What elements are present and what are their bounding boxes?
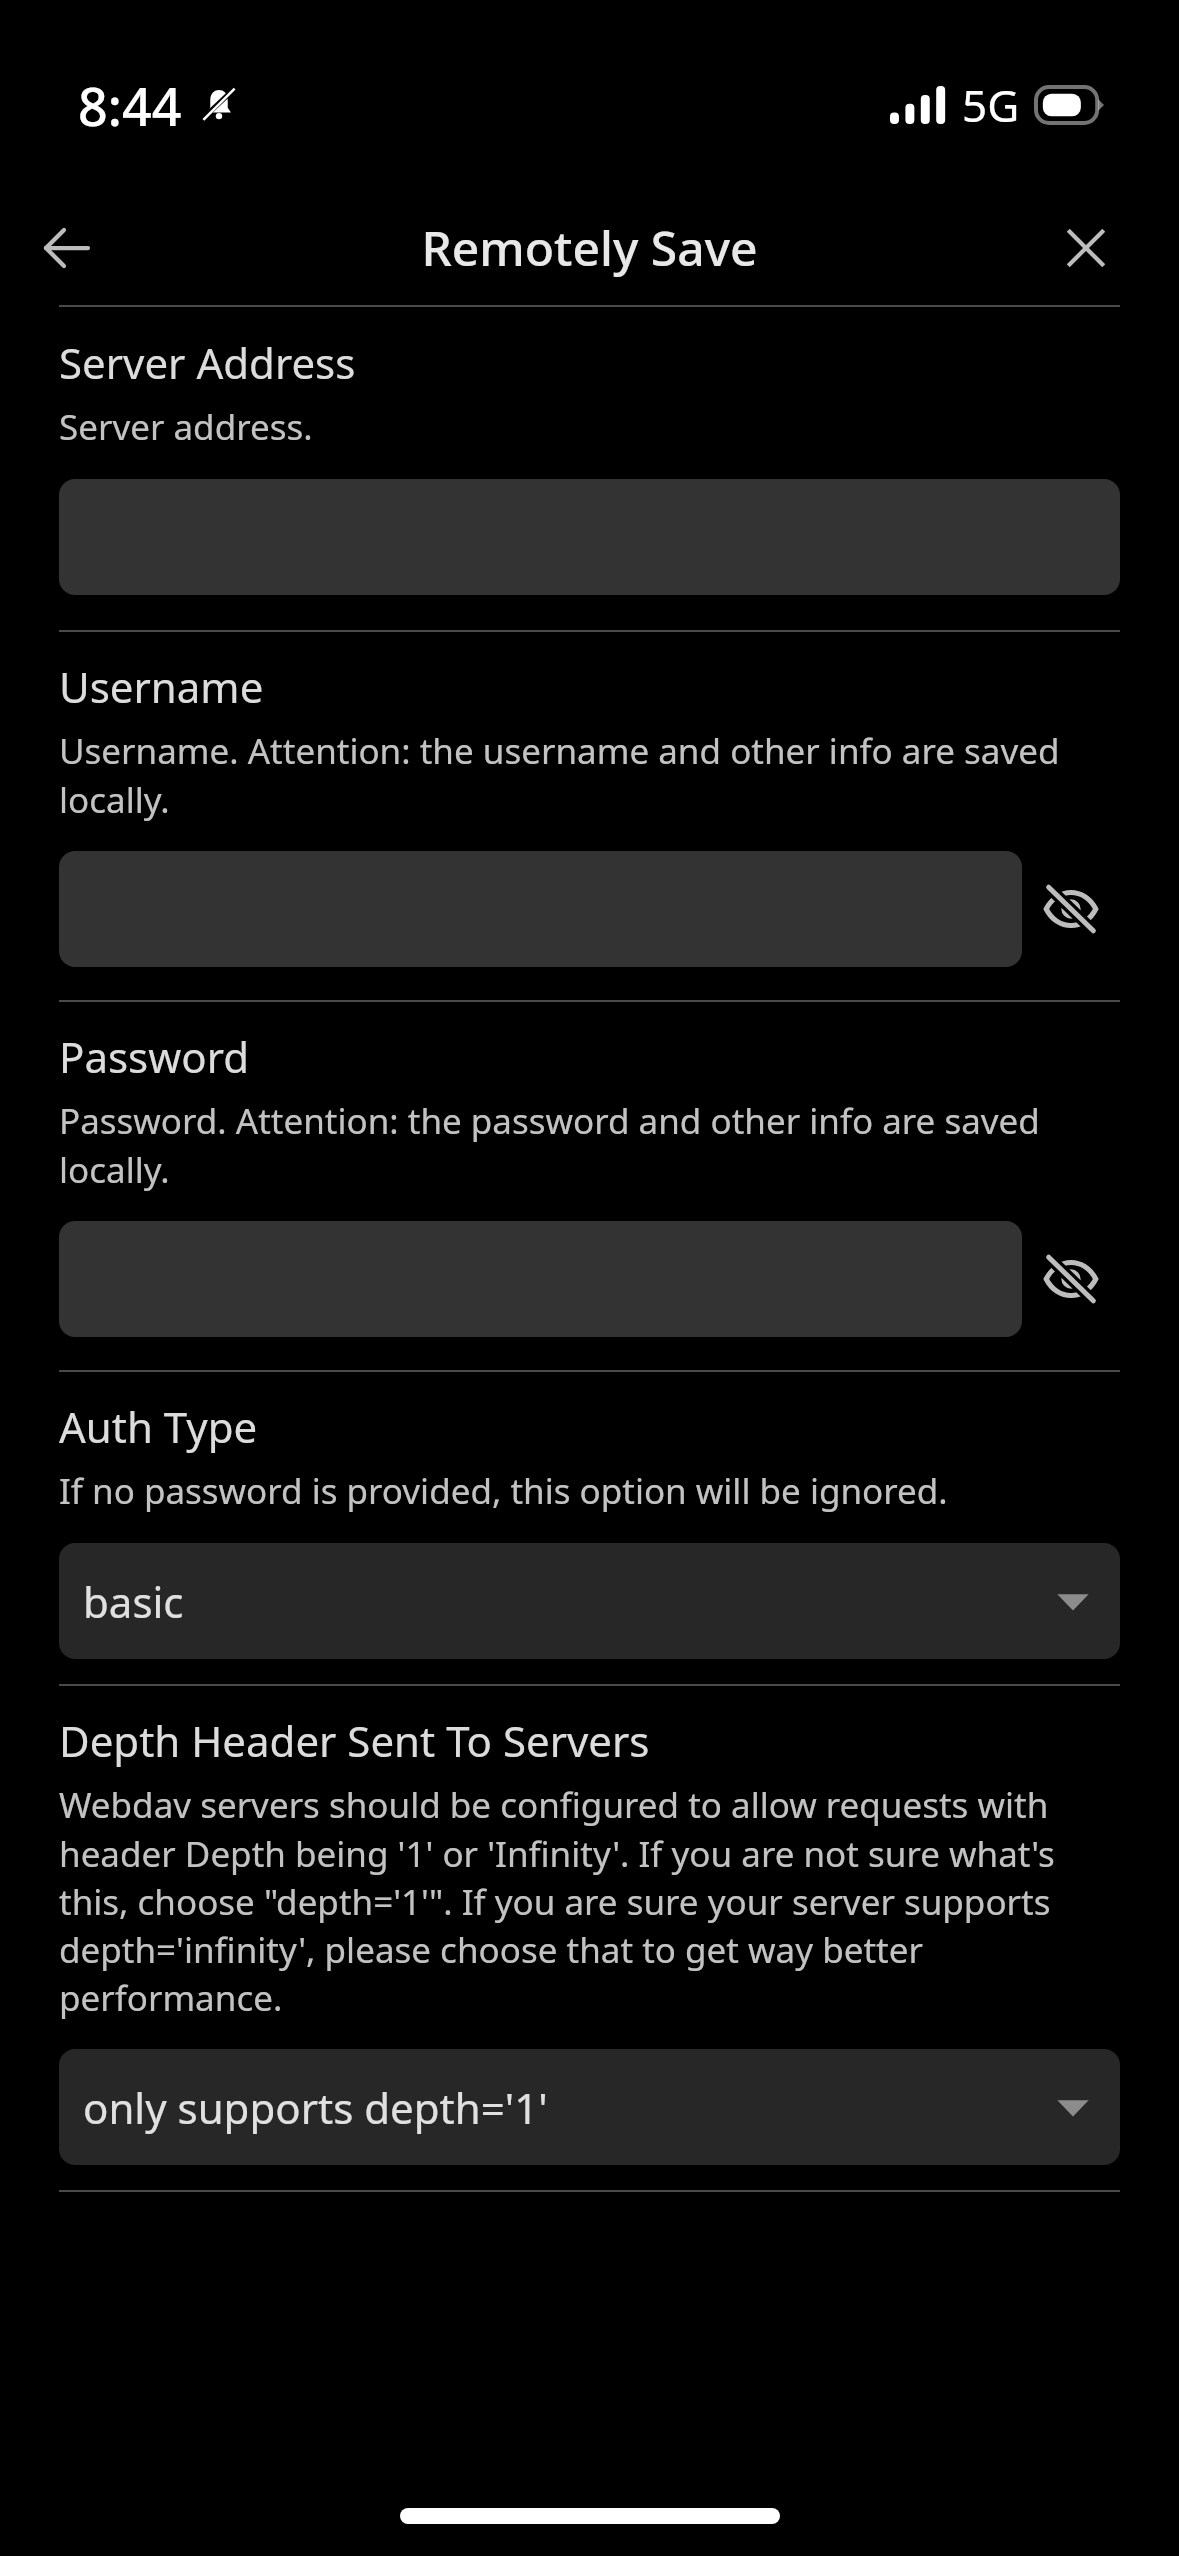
staticText: Server address. xyxy=(59,403,313,451)
button[interactable]: Close xyxy=(1046,208,1126,288)
staticText: basic xyxy=(83,1573,184,1630)
staticText: Depth Header Sent To Servers xyxy=(59,1712,650,1769)
button[interactable]: Back xyxy=(24,205,110,291)
staticText: 5G xyxy=(962,75,1020,135)
staticText: Server Address xyxy=(59,334,356,391)
staticText: If no password is provided, this option … xyxy=(59,1467,948,1515)
staticText: 8:44 xyxy=(78,70,182,141)
staticText: Password. Attention: the password and ot… xyxy=(59,1097,1120,1193)
staticText: Remotely Save xyxy=(421,215,758,280)
staticText: Username xyxy=(59,658,264,715)
staticText: Auth Type xyxy=(59,1398,258,1455)
button[interactable]: basic xyxy=(59,1543,1120,1659)
button[interactable]: Toggle visibility xyxy=(1022,851,1120,967)
button[interactable]: Toggle visibility xyxy=(1022,1221,1120,1337)
button[interactable]: only supports depth='1' xyxy=(59,2049,1120,2165)
staticText: Webdav servers should be configured to a… xyxy=(59,1781,1120,2021)
staticText: only supports depth='1' xyxy=(83,2079,548,2136)
staticText: Username. Attention: the username and ot… xyxy=(59,727,1120,823)
staticText: Password xyxy=(59,1028,249,1085)
